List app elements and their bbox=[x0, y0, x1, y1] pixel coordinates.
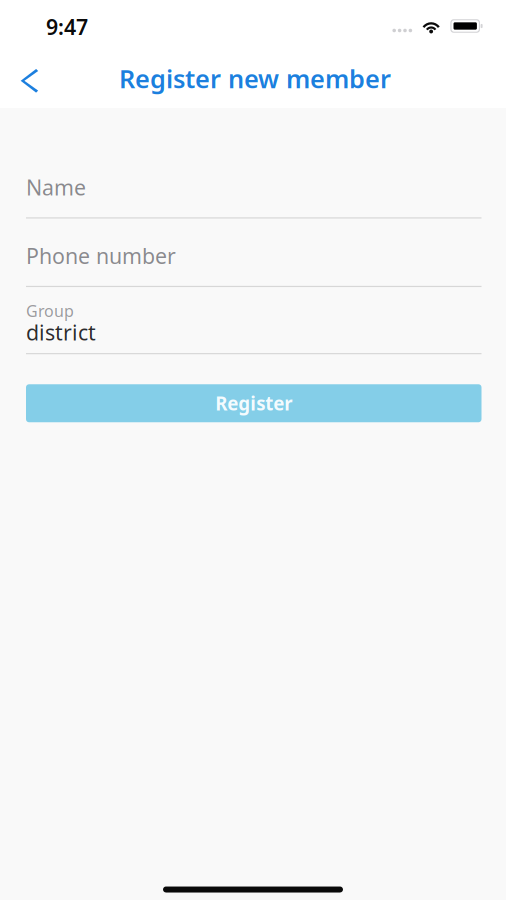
button[interactable]: Register bbox=[26, 384, 481, 422]
staticText: 9:47 bbox=[46, 12, 88, 41]
staticText: Phone number bbox=[26, 241, 176, 270]
staticText: Register new member bbox=[119, 62, 391, 95]
staticText: district bbox=[26, 318, 96, 346]
button[interactable]: Name bbox=[26, 173, 481, 218]
staticText: Name bbox=[26, 173, 86, 201]
button[interactable]: Back bbox=[0, 59, 56, 103]
button[interactable]: Phone number bbox=[26, 241, 481, 287]
staticText: Group bbox=[26, 300, 74, 321]
staticText: Register bbox=[215, 391, 292, 416]
button[interactable]: Group bbox=[26, 300, 481, 354]
